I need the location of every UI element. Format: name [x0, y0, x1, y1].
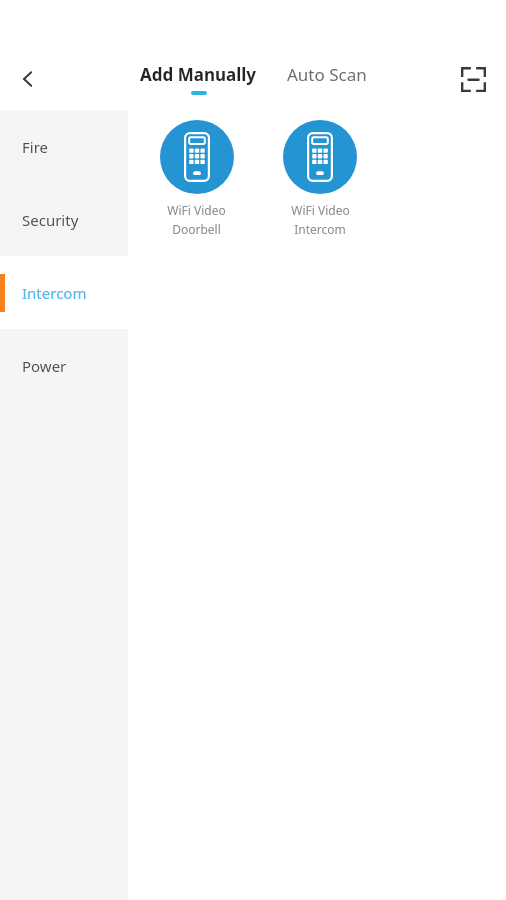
button[interactable]: WiFi Video	[258, 116, 382, 241]
staticText: Power	[22, 356, 67, 376]
button[interactable]: Power	[0, 329, 128, 402]
button[interactable]: WiFi Video	[135, 116, 258, 241]
staticText: Auto Scan	[287, 63, 367, 86]
staticText: Intercom	[22, 283, 87, 303]
staticText: Doorbell	[172, 221, 221, 237]
button[interactable]: Add Manually	[138, 59, 259, 99]
staticText: Intercom	[294, 221, 346, 237]
button[interactable]: Fire	[0, 110, 128, 183]
staticText: Add Manually	[140, 63, 257, 86]
button[interactable]: Back	[4, 55, 52, 103]
staticText: WiFi Video	[167, 202, 226, 218]
staticText: Security	[22, 210, 79, 230]
button[interactable]: Scan QR code	[450, 56, 496, 102]
staticText: Fire	[22, 137, 49, 157]
staticText: WiFi Video	[291, 202, 350, 218]
button[interactable]: Security	[0, 183, 128, 256]
button[interactable]: Intercom	[0, 256, 128, 329]
button[interactable]: Auto Scan	[285, 59, 369, 99]
